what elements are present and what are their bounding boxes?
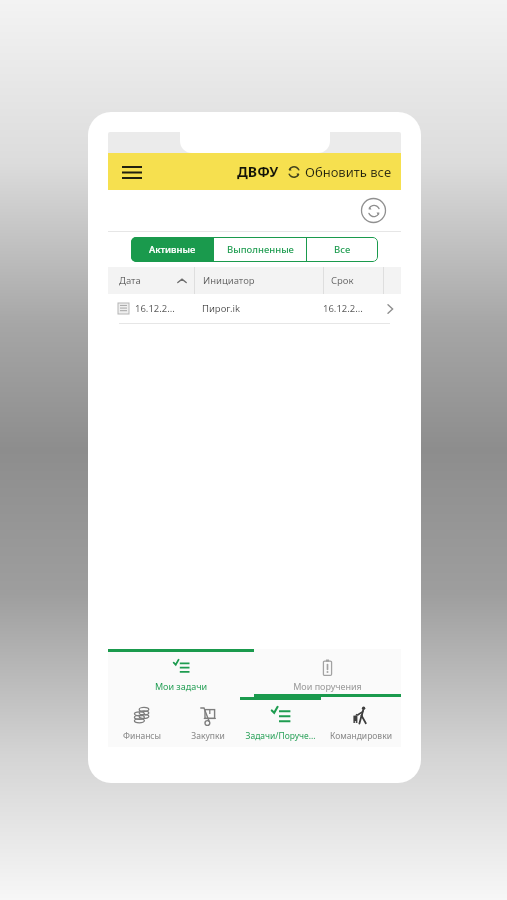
staticText: Выполненные	[227, 243, 294, 256]
button[interactable]: Командировки	[321, 697, 401, 747]
button[interactable]: Мои задачи	[108, 649, 254, 697]
staticText: Срок	[331, 274, 354, 287]
staticText: Задачи/Поруче...	[241, 730, 320, 742]
staticText: Активные	[149, 243, 196, 256]
button[interactable]: Refresh	[360, 197, 387, 224]
staticText: Мои поручения	[254, 680, 401, 692]
staticText: Финансы	[109, 730, 175, 742]
staticText: Дата	[119, 274, 141, 287]
staticText: ДВФУ	[237, 162, 279, 181]
button[interactable]: Задачи/Поруче...	[240, 697, 321, 747]
button[interactable]: Menu	[117, 157, 147, 187]
button[interactable]: Обновить все	[287, 163, 401, 181]
staticText: Мои задачи	[108, 680, 254, 692]
staticText: Пирог.ik	[202, 302, 241, 315]
staticText: Инициатор	[203, 274, 255, 287]
button[interactable]: Все	[307, 237, 378, 262]
button[interactable]: Срок	[324, 267, 383, 294]
button[interactable]: Финансы	[108, 697, 176, 747]
staticText: 16.12.2...	[135, 302, 175, 315]
staticText: Обновить все	[305, 163, 392, 181]
button[interactable]: Выполненные	[214, 237, 306, 262]
button[interactable]: Закупки	[176, 697, 240, 747]
button[interactable]: 16.12.2...	[108, 294, 401, 323]
staticText: Закупки	[177, 730, 239, 742]
staticText: Все	[334, 243, 351, 256]
button[interactable]: Инициатор	[195, 267, 323, 294]
staticText: 16.12.2...	[323, 302, 363, 315]
staticText: Командировки	[322, 730, 400, 742]
button[interactable]: Активные	[131, 237, 213, 262]
button[interactable]: Мои поручения	[254, 649, 401, 697]
button[interactable]: Дата	[108, 267, 194, 294]
